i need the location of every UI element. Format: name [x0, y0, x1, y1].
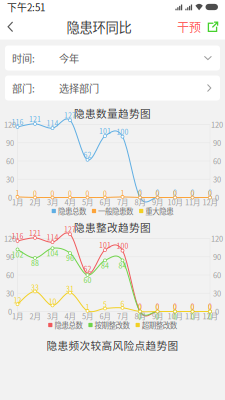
button[interactable]: 干预	[177, 14, 201, 39]
staticText: 0	[190, 301, 194, 311]
button[interactable]: 时间:	[5, 45, 220, 70]
staticText: 0	[208, 301, 212, 311]
staticText: 120	[211, 233, 223, 244]
staticText: 90	[6, 137, 14, 148]
staticText: 0	[8, 192, 12, 203]
staticText: 选择部门	[59, 81, 99, 95]
staticText: 116	[11, 117, 23, 127]
staticText: 1	[15, 188, 19, 198]
staticText: 0	[208, 311, 212, 321]
staticText: 100	[116, 241, 128, 251]
staticText: 干预	[177, 18, 201, 35]
staticText: 0	[138, 188, 142, 198]
staticText: 120	[4, 233, 16, 244]
staticText: 重大隐患	[145, 206, 173, 216]
staticText: 1	[120, 188, 124, 198]
staticText: 0	[173, 187, 177, 197]
staticText: 88	[31, 258, 39, 268]
staticText: 5月	[82, 197, 93, 207]
staticText: 部门:	[12, 81, 35, 95]
staticText: 11月	[185, 311, 200, 321]
staticText: 一般隐患数	[98, 206, 133, 216]
staticText: 84	[118, 260, 126, 270]
staticText: 9月	[152, 197, 163, 207]
staticText: 隐患数量趋势图	[74, 105, 151, 121]
staticText: 0	[173, 188, 177, 198]
staticText: 12月	[202, 197, 217, 207]
staticText: 隐患环同比	[66, 17, 131, 36]
staticText: 11月	[185, 197, 200, 207]
staticText: 0	[208, 302, 212, 312]
staticText: 120	[211, 119, 223, 130]
staticText: 90	[213, 251, 221, 262]
staticText: 隐患整改趋势图	[74, 219, 151, 235]
staticText: 隐患总数	[54, 320, 82, 330]
staticText: 114	[46, 232, 58, 242]
staticText: 6月	[99, 311, 110, 321]
staticText: 0	[50, 188, 54, 198]
staticText: 0	[138, 311, 142, 321]
staticText: 0	[173, 301, 177, 311]
staticText: 1	[85, 302, 89, 312]
button[interactable]: 部门:	[5, 75, 220, 100]
staticText: 1月	[12, 197, 23, 207]
staticText: 6	[120, 299, 124, 309]
staticText: 0	[138, 301, 142, 311]
staticText: 0	[215, 306, 219, 317]
staticText: 6月	[99, 197, 110, 207]
staticText: 1月	[12, 311, 23, 321]
staticText: 0	[8, 306, 12, 317]
staticText: 0	[155, 187, 159, 197]
staticText: 隐患总数	[58, 206, 86, 216]
staticText: 127	[64, 224, 76, 234]
staticText: 隐患频次较高风险点趋势图	[46, 337, 178, 353]
staticText: 0	[208, 187, 212, 197]
staticText: 7月	[117, 311, 128, 321]
staticText: 60	[213, 156, 221, 166]
staticText: 0	[155, 311, 159, 321]
staticText: 0	[68, 188, 72, 198]
button[interactable]: 返回	[0, 14, 21, 39]
staticText: 3月	[47, 311, 58, 321]
staticText: 10月	[167, 197, 182, 207]
staticText: 3月	[47, 197, 58, 207]
staticText: 60	[213, 270, 221, 280]
staticText: 30	[6, 174, 14, 185]
staticText: 100	[116, 127, 128, 137]
staticText: 0	[155, 188, 159, 198]
staticText: 今年	[59, 51, 79, 65]
staticText: 0	[138, 187, 142, 197]
staticText: 12	[13, 295, 21, 305]
staticText: 2月	[29, 197, 40, 207]
staticText: 101	[99, 126, 111, 136]
staticText: 10月	[167, 311, 182, 321]
staticText: 0	[155, 301, 159, 311]
staticText: 超期整改数	[142, 320, 177, 330]
staticText: 0	[85, 188, 89, 198]
staticText: 0	[190, 187, 194, 197]
staticText: 104	[46, 248, 58, 258]
staticText: 62	[83, 264, 91, 274]
staticText: 0	[190, 302, 194, 312]
staticText: 0	[173, 302, 177, 312]
staticText: 5	[103, 299, 107, 309]
staticText: 127	[64, 110, 76, 120]
staticText: 按期整改数	[95, 320, 130, 330]
staticText: 30	[6, 288, 14, 299]
staticText: 0	[173, 311, 177, 321]
staticText: 60	[6, 156, 14, 166]
staticText: 下午2:51	[7, 0, 45, 14]
staticText: 0	[190, 188, 194, 198]
staticText: 120	[4, 119, 16, 130]
button[interactable]: 分享	[201, 14, 225, 39]
staticText: 8月	[134, 311, 145, 321]
staticText: 101	[99, 240, 111, 250]
staticText: 0	[155, 302, 159, 312]
staticText: 33	[31, 282, 39, 292]
staticText: 7月	[117, 197, 128, 207]
staticText: 9月	[152, 311, 163, 321]
staticText: 4月	[64, 197, 75, 207]
staticText: 30	[213, 174, 221, 185]
staticText: 90	[6, 251, 14, 262]
staticText: 0	[138, 302, 142, 312]
